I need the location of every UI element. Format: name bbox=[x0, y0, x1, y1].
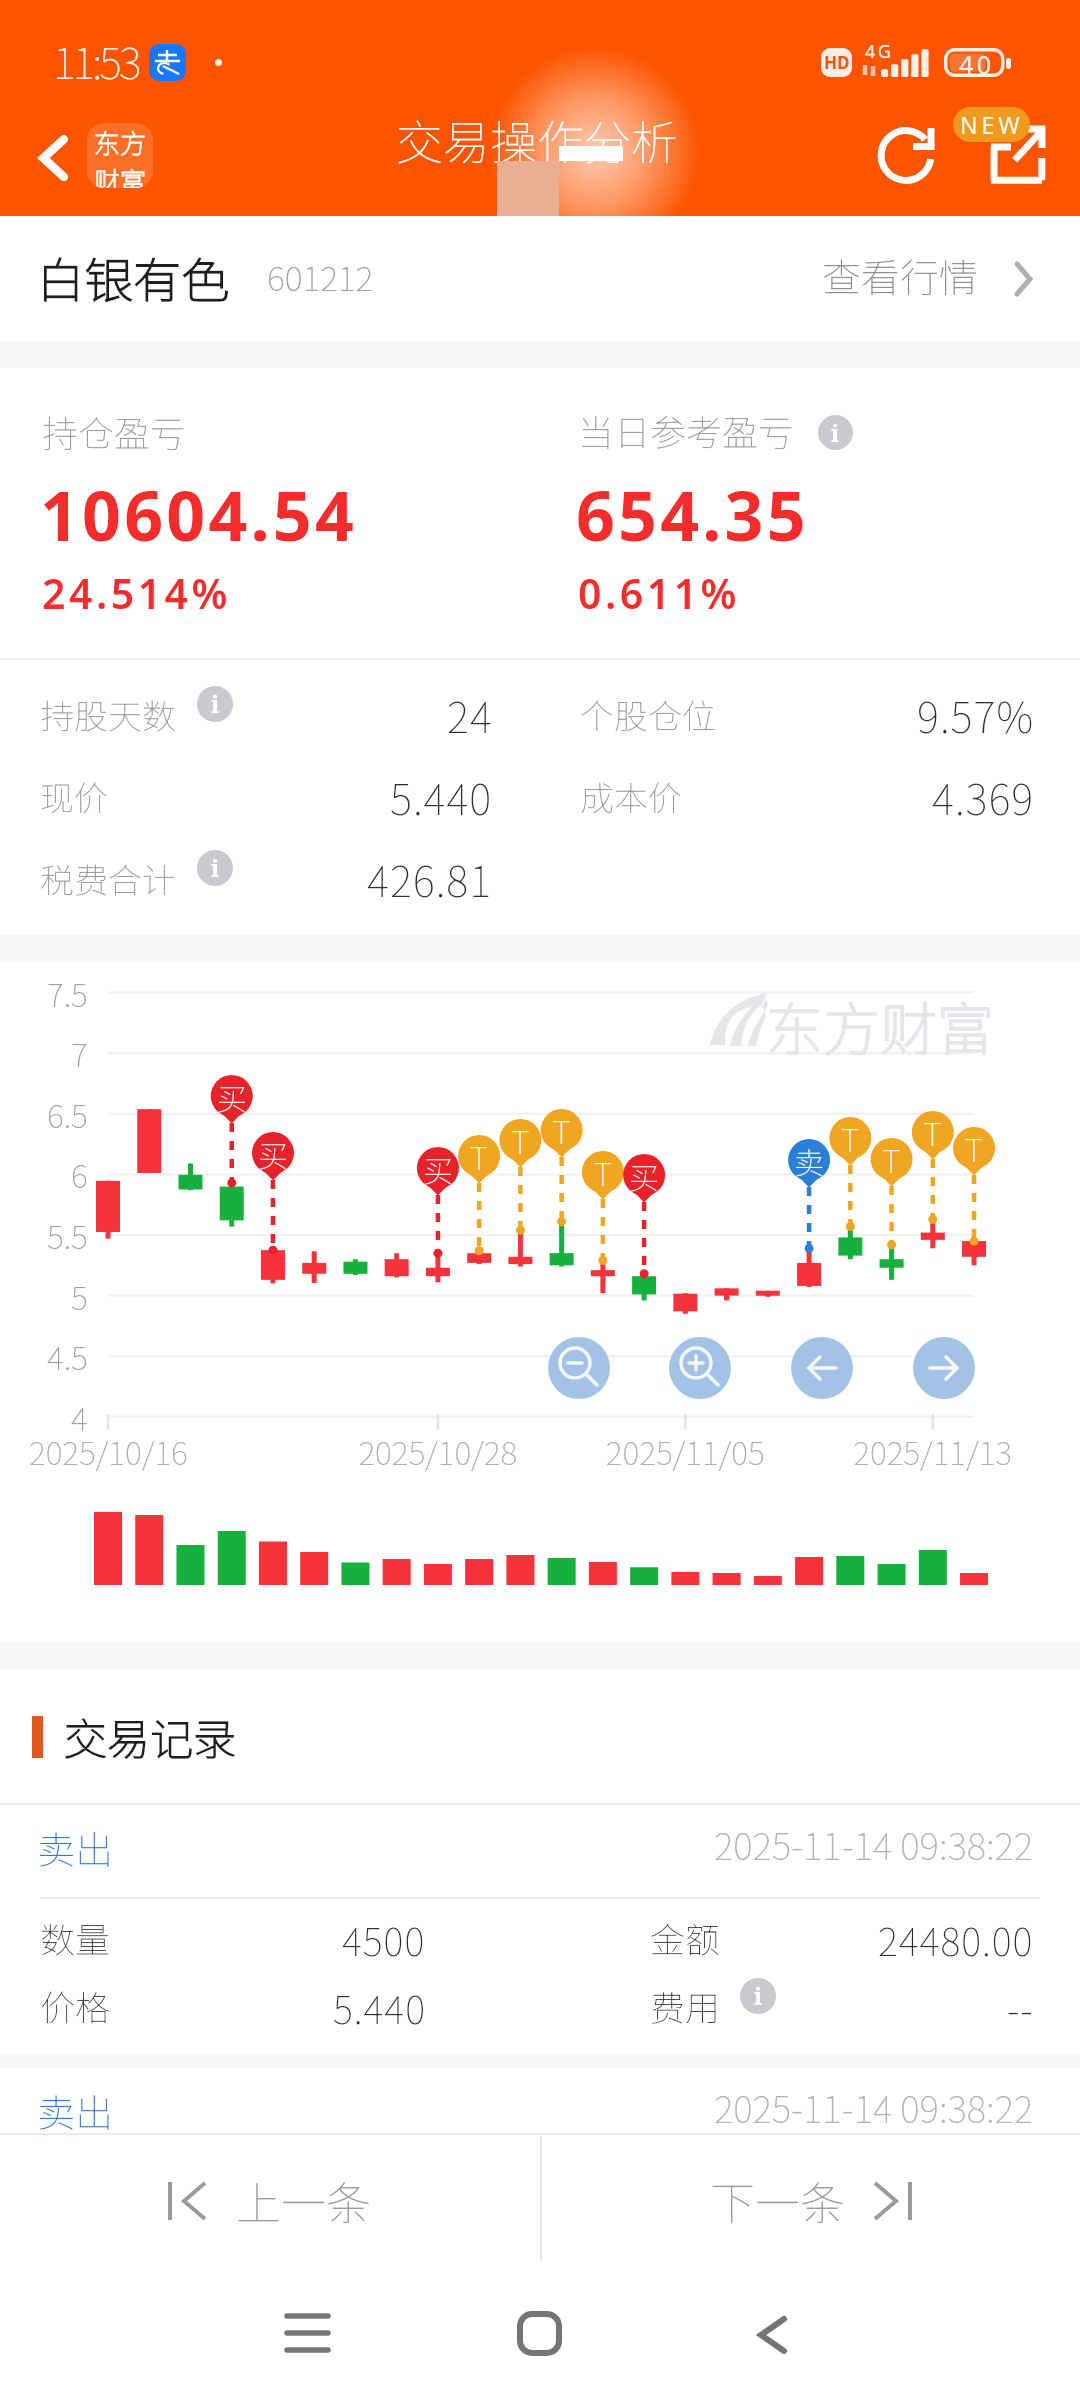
button[interactable]: Scroll right bbox=[913, 1337, 975, 1399]
staticText: 卖出 bbox=[37, 2083, 114, 2138]
staticText: NEW bbox=[960, 109, 1024, 140]
staticText: 成本价 bbox=[580, 772, 682, 821]
staticText: 数量 bbox=[40, 1912, 111, 1963]
staticText: 11:53 bbox=[53, 29, 139, 91]
button[interactable]: 查看行情 bbox=[800, 235, 1050, 315]
button[interactable]: Refresh bbox=[874, 124, 938, 188]
button[interactable]: 上一条 bbox=[0, 2135, 539, 2266]
staticText: 持股天数 bbox=[40, 690, 176, 739]
staticText: 费用 bbox=[650, 1980, 721, 2031]
staticText: 654.35 bbox=[576, 468, 809, 561]
staticText: 5.440 bbox=[390, 766, 493, 827]
staticText: 白银有色 bbox=[37, 242, 230, 312]
staticText: 交易记录 bbox=[64, 1705, 236, 1767]
staticText: 卖出 bbox=[37, 1820, 114, 1875]
staticText: 24480.00 bbox=[878, 1912, 1034, 1967]
staticText: 金额 bbox=[650, 1912, 721, 1963]
staticText: 601212 bbox=[267, 252, 374, 301]
staticText: i bbox=[831, 417, 840, 448]
button[interactable]: Zoom in bbox=[669, 1337, 731, 1399]
staticText: 2025-11-14 09:38:22 bbox=[714, 1817, 1034, 1871]
button[interactable]: Back bbox=[737, 2298, 807, 2368]
button[interactable]: Back bbox=[20, 124, 84, 188]
button[interactable]: 下一条 bbox=[545, 2135, 1080, 2266]
staticText: 上一条 bbox=[236, 2168, 372, 2233]
staticText: 个股仓位 bbox=[580, 690, 716, 739]
staticText: 价格 bbox=[40, 1980, 111, 2031]
staticText: i bbox=[211, 852, 220, 884]
staticText: 当日参考盈亏 bbox=[578, 404, 795, 456]
staticText: 财富 bbox=[94, 161, 147, 188]
staticText: 东方 bbox=[94, 123, 147, 161]
staticText: 24 bbox=[447, 684, 493, 745]
staticText: 9.57% bbox=[917, 684, 1035, 745]
staticText: 查看行情 bbox=[822, 247, 979, 303]
staticText: -- bbox=[1007, 1980, 1034, 2035]
staticText: 4.369 bbox=[932, 766, 1035, 827]
staticText: 交易操作分析 bbox=[396, 105, 678, 173]
staticText: 40 bbox=[959, 47, 995, 76]
staticText: 现价 bbox=[40, 772, 108, 821]
staticText: 5.440 bbox=[333, 1980, 426, 2035]
button[interactable]: Scroll left bbox=[791, 1337, 853, 1399]
staticText: 0.611% bbox=[578, 565, 740, 621]
staticText: 下一条 bbox=[710, 2168, 846, 2233]
button[interactable]: Share bbox=[987, 120, 1053, 186]
staticText: 2025-11-14 09:38:22 bbox=[714, 2080, 1034, 2134]
button[interactable]: Recent apps bbox=[272, 2298, 342, 2368]
staticText: i bbox=[211, 688, 220, 720]
staticText: HD bbox=[824, 51, 850, 74]
button[interactable]: Home bbox=[504, 2298, 574, 2368]
staticText: 10604.54 bbox=[40, 468, 357, 561]
staticText: 4G bbox=[865, 39, 894, 64]
staticText: 持仓盈亏 bbox=[42, 405, 187, 457]
staticText: 24.514% bbox=[42, 565, 231, 621]
staticText: 4500 bbox=[342, 1912, 426, 1967]
staticText: i bbox=[754, 1980, 763, 2012]
staticText: 426.81 bbox=[367, 848, 493, 909]
button[interactable]: East Money home bbox=[87, 123, 153, 188]
staticText: 税费合计 bbox=[40, 854, 176, 903]
button[interactable]: Zoom out bbox=[548, 1337, 610, 1399]
